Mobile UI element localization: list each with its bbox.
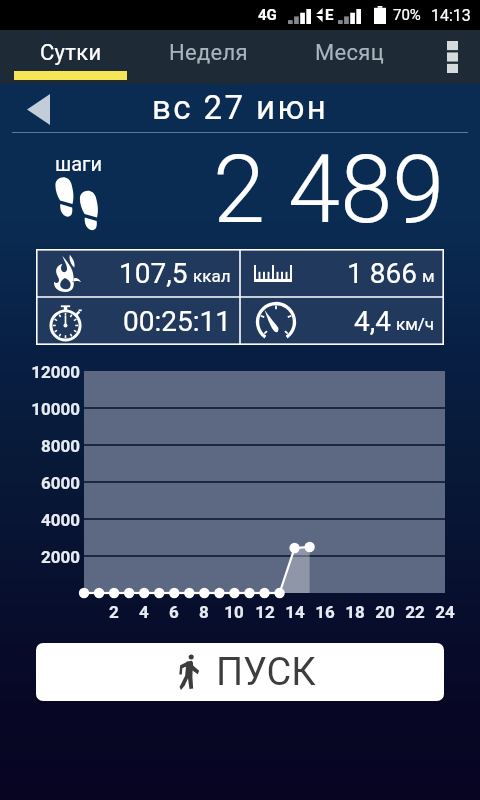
staticText: вс 27 июн — [152, 88, 329, 127]
staticText: 12 — [250, 602, 280, 622]
staticText: 2000 — [0, 547, 80, 567]
staticText: 4G — [258, 6, 277, 24]
staticText: 2 489 — [213, 135, 445, 245]
staticText: 4 — [129, 602, 159, 622]
staticText: шаги — [55, 152, 103, 175]
staticText: 16 — [310, 602, 340, 622]
staticText: 6 — [159, 602, 189, 622]
staticText: ккал — [193, 266, 231, 286]
staticText: км/ч — [396, 314, 435, 334]
button[interactable]: Неделя — [152, 30, 265, 84]
staticText: 1 866 — [347, 257, 417, 290]
staticText: 14:13 — [431, 6, 471, 25]
button[interactable]: Previous day — [10, 84, 66, 134]
staticText: 6000 — [0, 473, 80, 493]
staticText: 20 — [370, 602, 400, 622]
staticText: 70% — [393, 6, 421, 24]
staticText: 00:25:11 — [123, 305, 231, 338]
button[interactable]: More options — [438, 34, 466, 80]
staticText: 107,5 — [119, 257, 188, 290]
staticText: ПУСК — [216, 650, 316, 695]
staticText: 14 — [280, 602, 310, 622]
staticText: 2 — [99, 602, 129, 622]
button[interactable]: ПУСК — [36, 643, 444, 701]
staticText: 22 — [400, 602, 430, 622]
button[interactable]: Месяц — [293, 30, 406, 84]
staticText: 4000 — [0, 510, 80, 530]
staticText: м — [422, 266, 435, 286]
staticText: 10000 — [0, 399, 80, 419]
staticText: 10 — [219, 602, 249, 622]
staticText: E — [325, 6, 334, 24]
staticText: Неделя — [169, 40, 248, 66]
staticText: 4,4 — [354, 305, 391, 338]
staticText: Месяц — [315, 40, 385, 66]
staticText: Сутки — [40, 40, 102, 66]
button[interactable]: Сутки — [14, 30, 127, 84]
staticText: 8 — [189, 602, 219, 622]
staticText: 18 — [340, 602, 370, 622]
staticText: 12000 — [0, 362, 80, 382]
staticText: 8000 — [0, 436, 80, 456]
staticText: 24 — [430, 602, 460, 622]
